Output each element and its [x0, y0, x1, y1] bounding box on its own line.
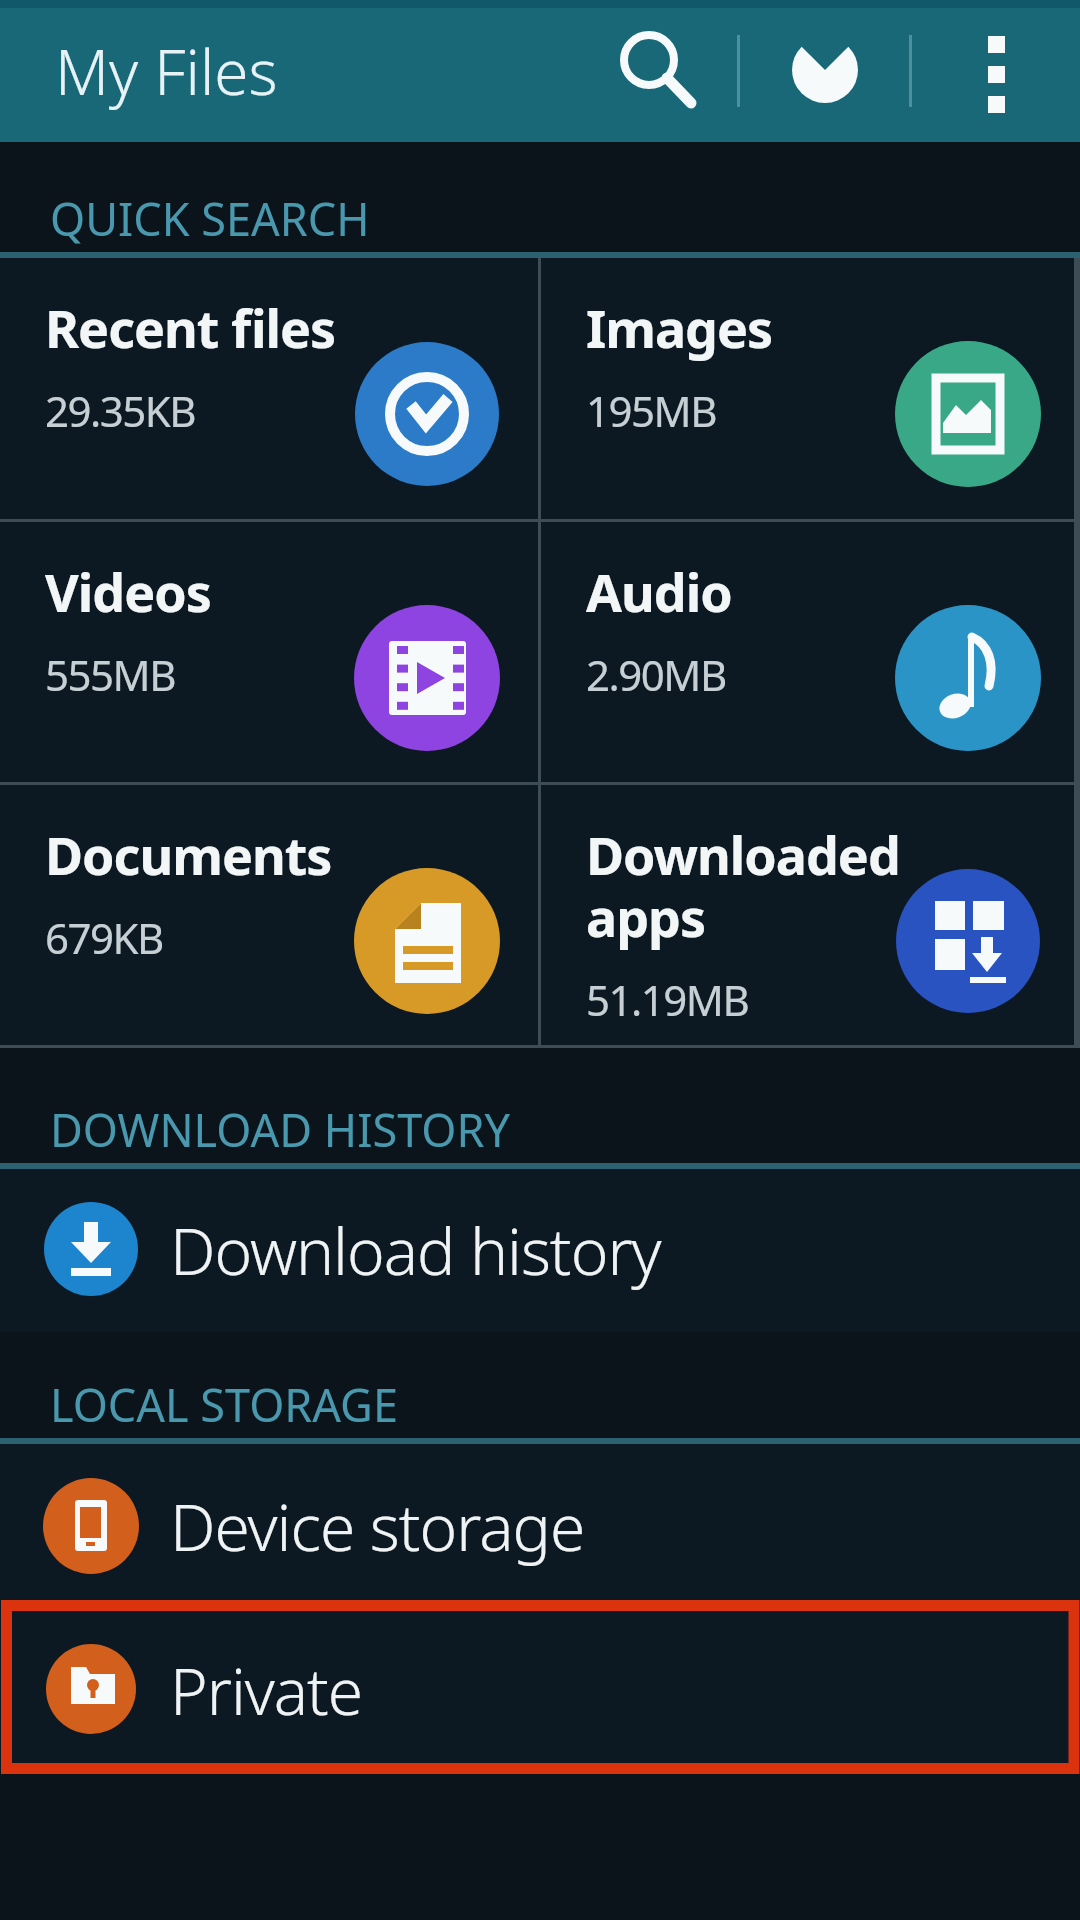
button[interactable]: Recent files	[0, 258, 538, 519]
button[interactable]: Documents	[0, 785, 538, 1045]
staticText: 2.90MB	[586, 646, 726, 703]
staticText: 195MB	[586, 382, 716, 439]
staticText: Documents	[45, 819, 332, 890]
staticText: Images	[586, 292, 773, 363]
staticText: 679KB	[45, 909, 163, 966]
staticText: 555MB	[45, 646, 175, 703]
staticText: Recent files	[45, 292, 336, 363]
staticText: 51.19MB	[586, 971, 749, 1028]
button[interactable]	[790, 0, 860, 142]
button[interactable]: Device storage	[0, 1444, 1080, 1608]
staticText: DOWNLOAD HISTORY	[50, 1099, 510, 1160]
staticText: Download history	[170, 1207, 661, 1294]
staticText: Downloaded apps	[586, 819, 900, 952]
button[interactable]: Images	[541, 258, 1074, 519]
staticText: My Files	[55, 29, 278, 113]
staticText: Videos	[45, 556, 211, 627]
staticText: QUICK SEARCH	[50, 188, 370, 249]
button[interactable]: Audio	[541, 522, 1074, 782]
button[interactable]: Videos	[0, 522, 538, 782]
staticText: Private	[170, 1647, 363, 1734]
button[interactable]: Downloaded apps	[541, 785, 1074, 1045]
staticText: LOCAL STORAGE	[50, 1374, 398, 1435]
button[interactable]	[595, 0, 705, 142]
button[interactable]: Download history	[0, 1169, 1080, 1332]
staticText: Device storage	[170, 1483, 585, 1570]
button[interactable]: Private	[0, 1610, 1080, 1770]
button[interactable]	[952, 0, 1040, 142]
staticText: Audio	[586, 556, 732, 627]
staticText: 29.35KB	[45, 382, 196, 439]
